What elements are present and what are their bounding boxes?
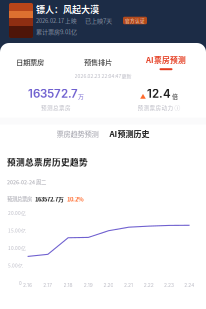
- button[interactable]: AI预测历史: [109, 128, 149, 139]
- staticText: 2.24: [184, 282, 194, 288]
- staticText: 12.4: [147, 86, 171, 100]
- staticText: 15.00亿: [8, 227, 26, 234]
- staticText: 2.17: [43, 282, 52, 288]
- staticText: 累计票房9.01亿: [36, 27, 77, 36]
- staticText: 倍: [172, 92, 178, 100]
- staticText: 预测总票房: [41, 103, 71, 111]
- staticText: 2026.02.17 上映: [36, 16, 77, 24]
- button[interactable]: AI票房预测: [140, 54, 192, 70]
- staticText: 2.22: [144, 282, 154, 288]
- staticText: 日期票房: [16, 57, 44, 67]
- button[interactable]: 预售排片: [72, 55, 124, 69]
- staticText: 2.16: [23, 282, 32, 288]
- staticText: 预测总票房历史趋势: [7, 155, 88, 168]
- staticText: 2.19: [84, 282, 93, 288]
- staticText: 10.00亿: [8, 244, 26, 251]
- staticText: 2.21: [124, 282, 133, 288]
- staticText: 2.20: [103, 282, 113, 288]
- staticText: 预售排片: [84, 57, 112, 67]
- staticText: 20.00亿: [8, 209, 26, 216]
- staticText: 2.23: [164, 282, 174, 288]
- staticText: AI预测历史: [109, 128, 149, 139]
- staticText: 镖人：风起大漠: [36, 2, 99, 15]
- staticText: 预测票房动力 ⓘ: [137, 103, 180, 111]
- staticText: ▲: [140, 92, 146, 100]
- staticText: 163572.7万: [35, 195, 64, 203]
- staticText: 已上映7天: [85, 16, 112, 25]
- staticText: 10.2%: [67, 195, 84, 203]
- staticText: 万: [78, 92, 84, 100]
- staticText: 2.18: [63, 282, 72, 288]
- button[interactable]: 票房趋势预测: [56, 128, 98, 139]
- staticText: 官方认证: [125, 17, 145, 24]
- staticText: 163572.7: [28, 86, 78, 100]
- staticText: 2026.02.23 22:04:47更新: [74, 72, 131, 79]
- staticText: 票房趋势预测: [56, 128, 98, 139]
- staticText: AI票房预测: [146, 54, 186, 65]
- staticText: 5.00亿: [8, 262, 23, 269]
- staticText: 2026-02-24 周二: [7, 178, 46, 186]
- button[interactable]: 日期票房: [4, 55, 56, 69]
- staticText: 0: [19, 279, 22, 286]
- staticText: 预测总票房: [7, 195, 32, 203]
